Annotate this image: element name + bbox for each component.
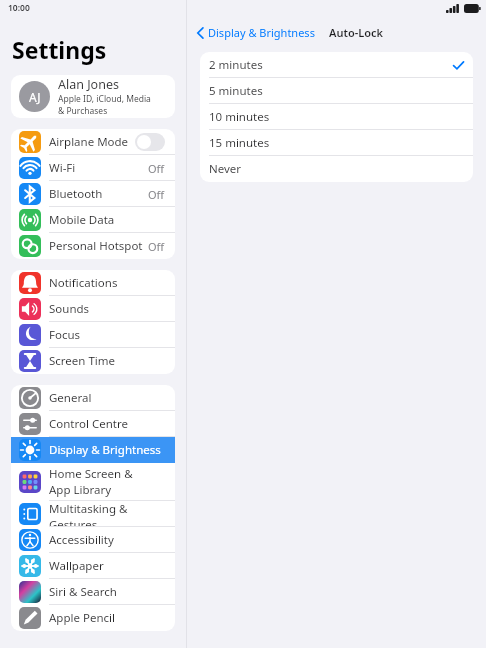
staticText: Apple Pencil xyxy=(49,610,115,626)
button[interactable]: Airplane Mode xyxy=(11,129,175,155)
button[interactable]: 15 minutes xyxy=(200,130,473,156)
staticText: Wallpaper xyxy=(49,558,104,574)
staticText: Auto-Lock xyxy=(329,25,383,40)
button[interactable]: Display & Brightness xyxy=(195,23,317,42)
staticText: Wi-Fi xyxy=(49,160,76,176)
staticText: App Library xyxy=(49,482,112,498)
button[interactable]: Accessibility xyxy=(11,527,175,553)
button[interactable]: Apple Pencil xyxy=(11,605,175,631)
staticText: Off xyxy=(148,239,165,254)
staticText: Display & Brightness xyxy=(49,442,161,458)
staticText: Accessibility xyxy=(49,532,114,548)
staticText: Home Screen & xyxy=(49,466,133,482)
button[interactable]: Siri & Search xyxy=(11,579,175,605)
staticText: Apple ID, iCloud, Media xyxy=(58,93,151,105)
staticText: Screen Time xyxy=(49,353,116,369)
button[interactable]: Wallpaper xyxy=(11,553,175,579)
button[interactable]: Display & Brightness xyxy=(11,437,175,463)
button[interactable]: Wi-Fi xyxy=(11,155,175,181)
staticText: Settings xyxy=(12,34,107,65)
button[interactable]: Multitasking & Gestures xyxy=(11,501,175,527)
button[interactable]: Never xyxy=(200,156,473,182)
button[interactable]: General xyxy=(11,385,175,411)
staticText: 2 minutes xyxy=(209,57,263,73)
staticText: Off xyxy=(148,161,165,176)
staticText: Personal Hotspot xyxy=(49,238,143,254)
staticText: Off xyxy=(148,187,165,202)
staticText: Multitasking & Gestures xyxy=(49,501,165,527)
button[interactable]: Notifications xyxy=(11,270,175,296)
button[interactable]: 2 minutes xyxy=(200,52,473,78)
staticText: Control Centre xyxy=(49,416,128,432)
button[interactable]: Control Centre xyxy=(11,411,175,437)
staticText: Airplane Mode xyxy=(49,134,129,150)
staticText: Display & Brightness xyxy=(208,25,315,40)
staticText: Never xyxy=(209,161,242,177)
button[interactable]: AJ xyxy=(11,75,175,118)
button[interactable]: 10 minutes xyxy=(200,104,473,130)
button[interactable]: Screen Time xyxy=(11,348,175,374)
button[interactable]: Focus xyxy=(11,322,175,348)
button[interactable]: Home Screen & xyxy=(11,463,175,501)
staticText: Siri & Search xyxy=(49,584,117,600)
button[interactable]: Sounds xyxy=(11,296,175,322)
button[interactable]: 5 minutes xyxy=(200,78,473,104)
staticText: Alan Jones xyxy=(58,76,119,93)
staticText: Sounds xyxy=(49,301,90,317)
button[interactable]: Bluetooth xyxy=(11,181,175,207)
staticText: Mobile Data xyxy=(49,212,115,228)
staticText: Bluetooth xyxy=(49,186,103,202)
staticText: 10:00 xyxy=(8,2,30,14)
staticText: 10 minutes xyxy=(209,109,270,125)
button[interactable]: Airplane Mode toggle xyxy=(135,133,165,151)
staticText: General xyxy=(49,390,92,406)
button[interactable]: Personal Hotspot xyxy=(11,233,175,259)
staticText: Notifications xyxy=(49,275,118,291)
staticText: AJ xyxy=(29,89,41,105)
button[interactable]: Mobile Data xyxy=(11,207,175,233)
staticText: & Purchases xyxy=(58,105,108,117)
staticText: 5 minutes xyxy=(209,83,263,99)
staticText: Focus xyxy=(49,327,81,343)
staticText: 15 minutes xyxy=(209,135,270,151)
